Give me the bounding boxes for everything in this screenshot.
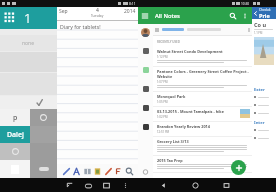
staticText: 2014	[124, 8, 136, 15]
button[interactable]: Grocery List 3/13	[153, 137, 252, 155]
button[interactable]: 2015 Tax Prep	[153, 156, 252, 172]
button[interactable]: Archive	[142, 85, 150, 93]
button[interactable]	[153, 24, 252, 35]
staticText: Inter	[254, 120, 265, 126]
button[interactable]: Key	[30, 160, 57, 178]
button[interactable]: Settings	[142, 123, 150, 131]
staticText: Exter	[254, 87, 265, 93]
staticText: 1.1 PM	[254, 31, 263, 35]
staticText: Mcnequol Park	[157, 94, 186, 99]
button[interactable]: Back	[64, 180, 75, 191]
button[interactable]: Search	[125, 167, 134, 176]
button[interactable]: Highlight	[104, 167, 113, 176]
button[interactable]: Back	[158, 180, 169, 191]
button[interactable]: Key	[0, 160, 30, 178]
staticText: Co u	[254, 21, 266, 28]
staticText: 1	[24, 9, 32, 27]
button[interactable]: Attach	[93, 167, 102, 176]
button[interactable]: Back	[253, 11, 258, 16]
button[interactable]: Recents	[221, 180, 232, 191]
button[interactable]: Brandon Yearly Review 2014	[153, 122, 252, 136]
button[interactable]: Back	[252, 7, 276, 19]
staticText: Prie	[259, 12, 270, 19]
button[interactable]: More	[120, 180, 131, 191]
staticText: 1:07 PM	[157, 80, 168, 84]
button[interactable]: Sync	[142, 169, 149, 175]
button[interactable]: p	[0, 109, 30, 126]
staticText: Grocery List 3/13	[157, 139, 189, 144]
button[interactable]: Search	[229, 12, 237, 20]
button[interactable]: Apps grid	[0, 7, 57, 29]
button[interactable]: Home	[190, 180, 201, 191]
button[interactable]: Menu	[138, 7, 252, 24]
staticText: 1:02 PM	[157, 115, 168, 119]
button[interactable]: Apps grid	[4, 12, 16, 24]
staticText: 1:12 PM	[157, 55, 168, 59]
button[interactable]: MTN Corporate	[153, 173, 252, 178]
button[interactable]: Key	[30, 109, 57, 126]
staticText: All Notes	[155, 12, 180, 20]
staticText: Sep	[59, 8, 68, 15]
button[interactable]: Home	[83, 180, 94, 191]
staticText: none	[22, 40, 35, 47]
button[interactable]: New note	[231, 160, 246, 175]
button[interactable]: Notes	[142, 47, 150, 55]
button[interactable]: Trash	[142, 104, 150, 112]
button[interactable]: 03-13-2015 - Mount Tamalpais - hike	[153, 107, 252, 121]
button[interactable]: Pen	[62, 167, 71, 176]
staticText: Pantone Colors - Greenery Street Coffee …	[157, 69, 250, 79]
button[interactable]: Mcnequol Park	[153, 92, 252, 106]
button[interactable]: Format	[114, 167, 123, 176]
button[interactable]: Pantone Colors - Greenery Street Coffee …	[153, 67, 252, 91]
button[interactable]: Dalej	[0, 126, 30, 143]
button[interactable]: Account	[141, 28, 150, 37]
button[interactable]: Menu	[141, 12, 149, 20]
button[interactable]: Recents	[101, 180, 112, 191]
staticText: 10:30	[241, 2, 250, 6]
staticText: 8:11	[129, 1, 136, 6]
button[interactable]: More options	[241, 12, 249, 20]
staticText: 4	[96, 7, 99, 14]
staticText: Dalej	[7, 130, 24, 140]
staticText: Walnut Street Condo Development	[157, 49, 223, 54]
staticText: p	[13, 113, 18, 123]
button[interactable]: Key	[0, 143, 30, 160]
staticText: 12:51 PM	[157, 130, 170, 134]
staticText: 1:05 PM	[157, 100, 168, 104]
button[interactable]: Text	[72, 167, 81, 176]
button[interactable]: Reminders	[142, 66, 150, 74]
staticText: 03-13-2015 - Mount Tamalpais - hike	[157, 109, 224, 114]
staticText: Brandon Yearly Review 2014	[157, 124, 210, 129]
staticText: Tuesday	[91, 14, 104, 18]
staticText: Cheduk	[259, 8, 271, 12]
staticText: Diary for tablets!	[60, 23, 101, 30]
button[interactable]: none	[0, 35, 57, 51]
staticText: 2015 Tax Prep	[157, 158, 183, 163]
button[interactable]: Walnut Street Condo Development	[153, 47, 252, 66]
button[interactable]: Confirm	[36, 98, 43, 107]
staticText: RECENTLY USED	[157, 40, 180, 44]
button[interactable]: Grid	[83, 167, 92, 176]
